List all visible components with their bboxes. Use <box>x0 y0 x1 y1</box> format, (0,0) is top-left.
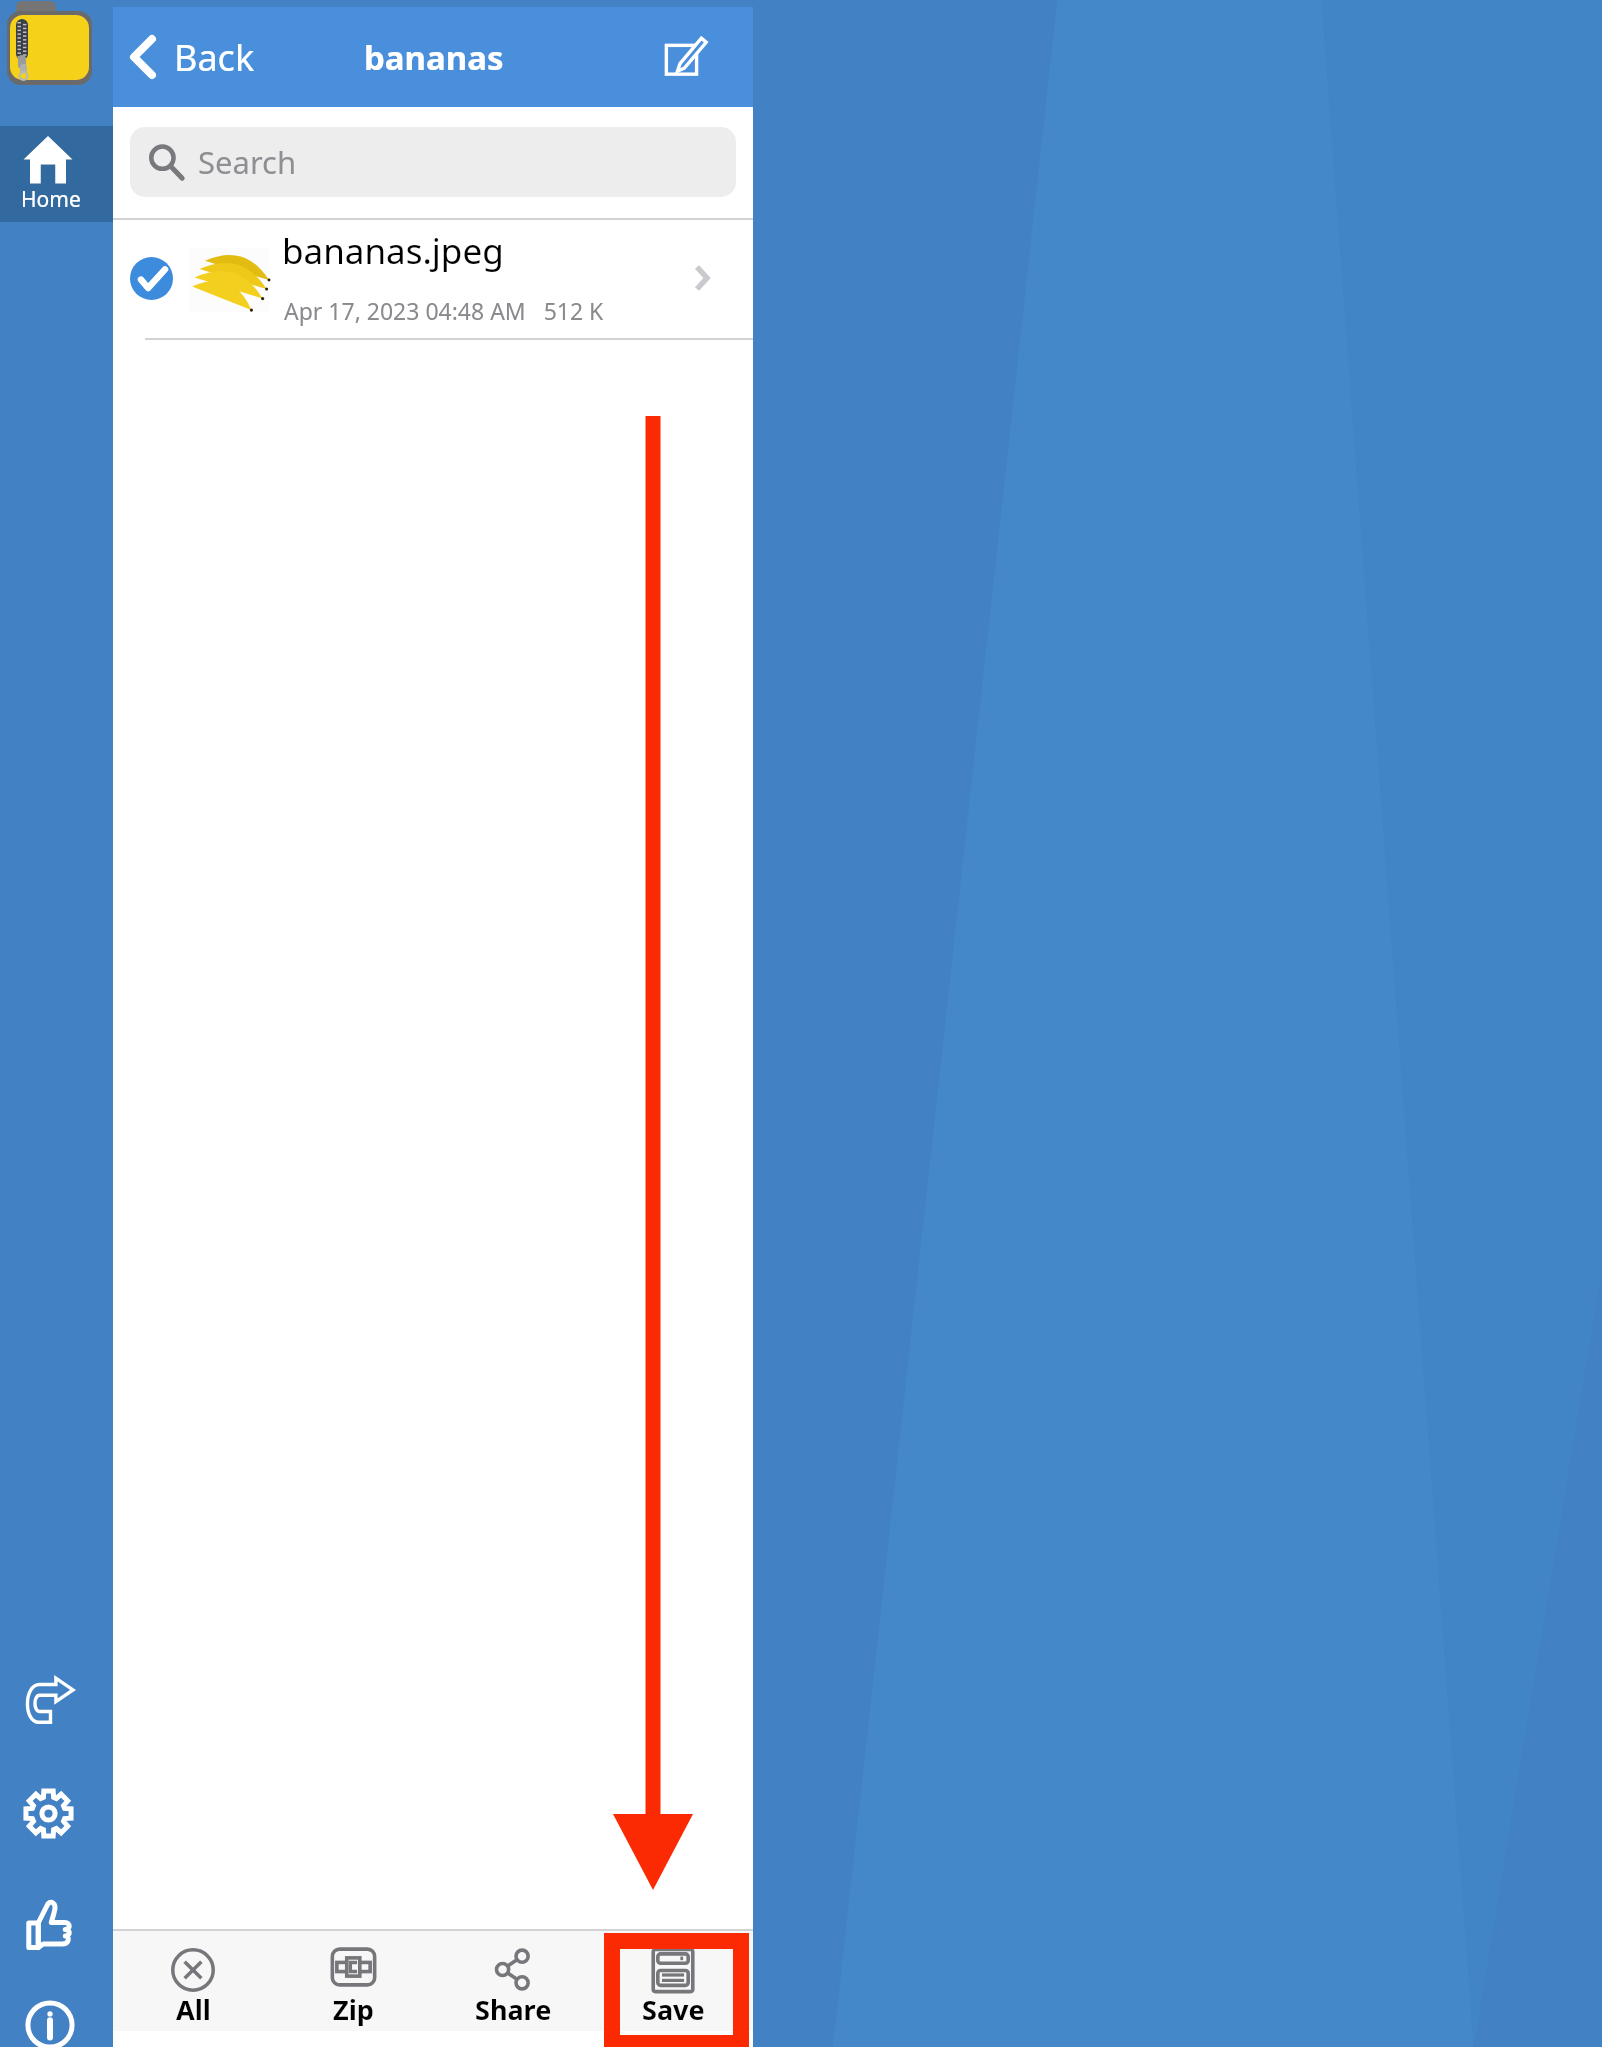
staticText: Search <box>198 141 297 183</box>
button[interactable]: bananas.jpeg <box>113 219 753 339</box>
button[interactable]: Back <box>127 7 255 107</box>
button[interactable]: Search <box>130 127 736 197</box>
button[interactable]: WinZip app icon <box>2 0 110 108</box>
button[interactable]: Redo <box>28 1680 73 1725</box>
button[interactable]: Zip <box>273 1931 433 2031</box>
button[interactable]: Settings <box>24 1789 73 1838</box>
staticText: Apr 17, 2023 04:48 AM 512 K <box>284 295 604 326</box>
button[interactable]: Home <box>0 126 113 222</box>
staticText: bananas.jpeg <box>282 227 504 275</box>
staticText: Zip <box>333 1991 374 2028</box>
staticText: Share <box>475 1991 552 2028</box>
button[interactable]: Edit <box>663 30 711 78</box>
button[interactable]: Like <box>27 1899 72 1949</box>
button[interactable]: Info <box>26 2001 74 2047</box>
button[interactable]: Share <box>433 1931 593 2031</box>
staticText: Back <box>174 33 255 82</box>
staticText: bananas <box>364 35 504 80</box>
staticText: Home <box>21 185 81 214</box>
button[interactable]: All <box>113 1931 273 2031</box>
staticText: Save <box>642 1991 705 2028</box>
button[interactable]: Save <box>593 1931 753 2031</box>
staticText: All <box>176 1991 211 2028</box>
